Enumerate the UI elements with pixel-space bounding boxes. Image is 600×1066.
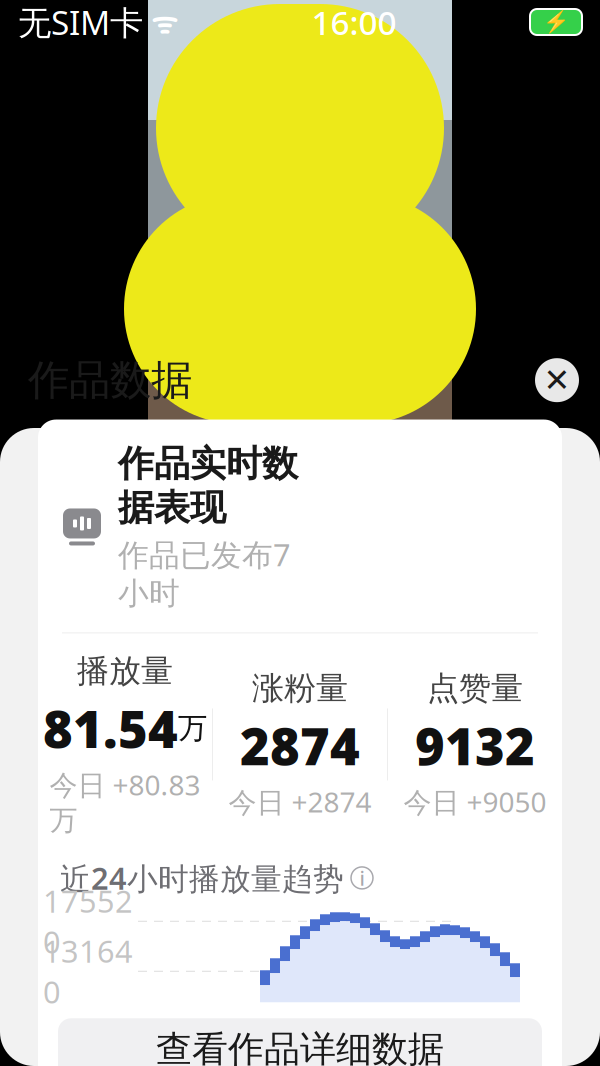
staticText: 今日 +9050 bbox=[403, 783, 546, 820]
staticText: 无SIM卡 bbox=[18, 0, 143, 44]
staticText: 近24小时播放量趋势 bbox=[60, 857, 344, 898]
button[interactable]: 关闭 bbox=[532, 355, 582, 405]
staticText: i bbox=[359, 865, 364, 891]
staticText: 万 bbox=[178, 710, 207, 746]
staticText: 175520 bbox=[43, 880, 133, 962]
staticText: 今日 +2874 bbox=[228, 783, 371, 820]
staticText: 查看作品详细数据 bbox=[156, 1027, 444, 1066]
staticText: ᯤ bbox=[143, 2, 178, 41]
staticText: ✕ bbox=[543, 362, 570, 398]
staticText: 播放量 bbox=[77, 651, 173, 691]
staticText: 131640 bbox=[43, 930, 133, 1012]
staticText: 涨粉量 bbox=[252, 669, 348, 708]
staticText: 今日 +80.83万 bbox=[49, 766, 200, 838]
staticText: 作品已发布7小时 bbox=[118, 534, 291, 612]
staticText: ⚡ bbox=[542, 10, 569, 34]
staticText: 9132 bbox=[415, 712, 535, 779]
staticText: 2874 bbox=[240, 712, 360, 779]
staticText: 作品实时数据表现 bbox=[118, 442, 298, 530]
button[interactable]: 查看作品详细数据 bbox=[58, 1018, 542, 1066]
staticText: 81.54 bbox=[43, 695, 178, 762]
staticText: 作品数据 bbox=[28, 355, 192, 406]
staticText: 16:00 bbox=[311, 0, 396, 44]
staticText: 点赞量 bbox=[427, 669, 523, 708]
